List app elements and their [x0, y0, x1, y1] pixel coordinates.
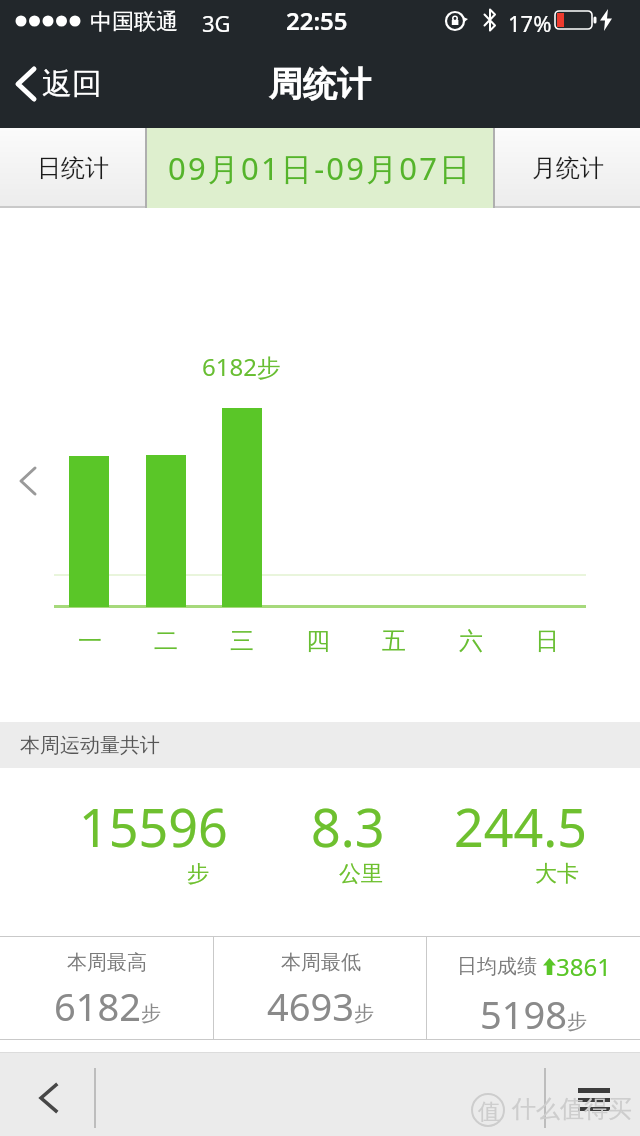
button[interactable]: 09月01日-09月07日: [147, 128, 493, 208]
staticText: 4693: [267, 980, 354, 1032]
staticText: 6182: [54, 980, 141, 1032]
staticText: 15596: [79, 791, 228, 862]
staticText: 公里: [339, 860, 383, 888]
staticText: 09月01日-09月07日: [168, 147, 473, 189]
staticText: 22:55: [286, 4, 348, 37]
staticText: 步: [567, 1009, 587, 1034]
staticText: 月统计: [532, 153, 604, 183]
staticText: 日: [535, 626, 559, 656]
staticText: 本周最低: [281, 950, 361, 975]
staticText: 六: [459, 626, 483, 656]
button[interactable]: 返回: [14, 65, 102, 103]
staticText: 3861: [556, 950, 611, 983]
staticText: 四: [306, 626, 330, 656]
button[interactable]: 日统计: [0, 128, 145, 208]
button[interactable]: 本周最高: [0, 936, 214, 1040]
staticText: 一: [78, 626, 102, 656]
staticText: 步: [354, 1001, 374, 1026]
staticText: 五: [382, 626, 406, 656]
staticText: 步: [141, 1001, 161, 1026]
staticText: 5198: [480, 988, 567, 1040]
staticText: 日统计: [37, 153, 109, 183]
button[interactable]: [26, 1076, 70, 1120]
staticText: 3G: [202, 8, 231, 38]
staticText: 本周最高: [67, 950, 147, 975]
staticText: 值: [478, 1098, 500, 1126]
staticText: 8.3: [311, 791, 385, 862]
staticText: 6182步: [202, 350, 281, 383]
staticText: 周统计: [269, 63, 371, 106]
button[interactable]: 月统计: [495, 128, 640, 208]
button[interactable]: [566, 1080, 622, 1120]
staticText: 三: [230, 626, 254, 656]
staticText: 返回: [42, 65, 102, 103]
staticText: 步: [187, 860, 209, 888]
staticText: 二: [154, 626, 178, 656]
button[interactable]: [8, 456, 48, 506]
staticText: 244.5: [454, 791, 587, 862]
staticText: 本周运动量共计: [20, 733, 160, 758]
staticText: 大卡: [535, 860, 579, 888]
button[interactable]: 日均成绩: [427, 936, 640, 1040]
staticText: 日均成绩: [457, 954, 537, 979]
staticText: 中国联通: [90, 8, 178, 36]
button[interactable]: 本周最低: [214, 936, 427, 1040]
staticText: 什么值得买: [512, 1094, 632, 1124]
staticText: 17%: [508, 8, 552, 38]
